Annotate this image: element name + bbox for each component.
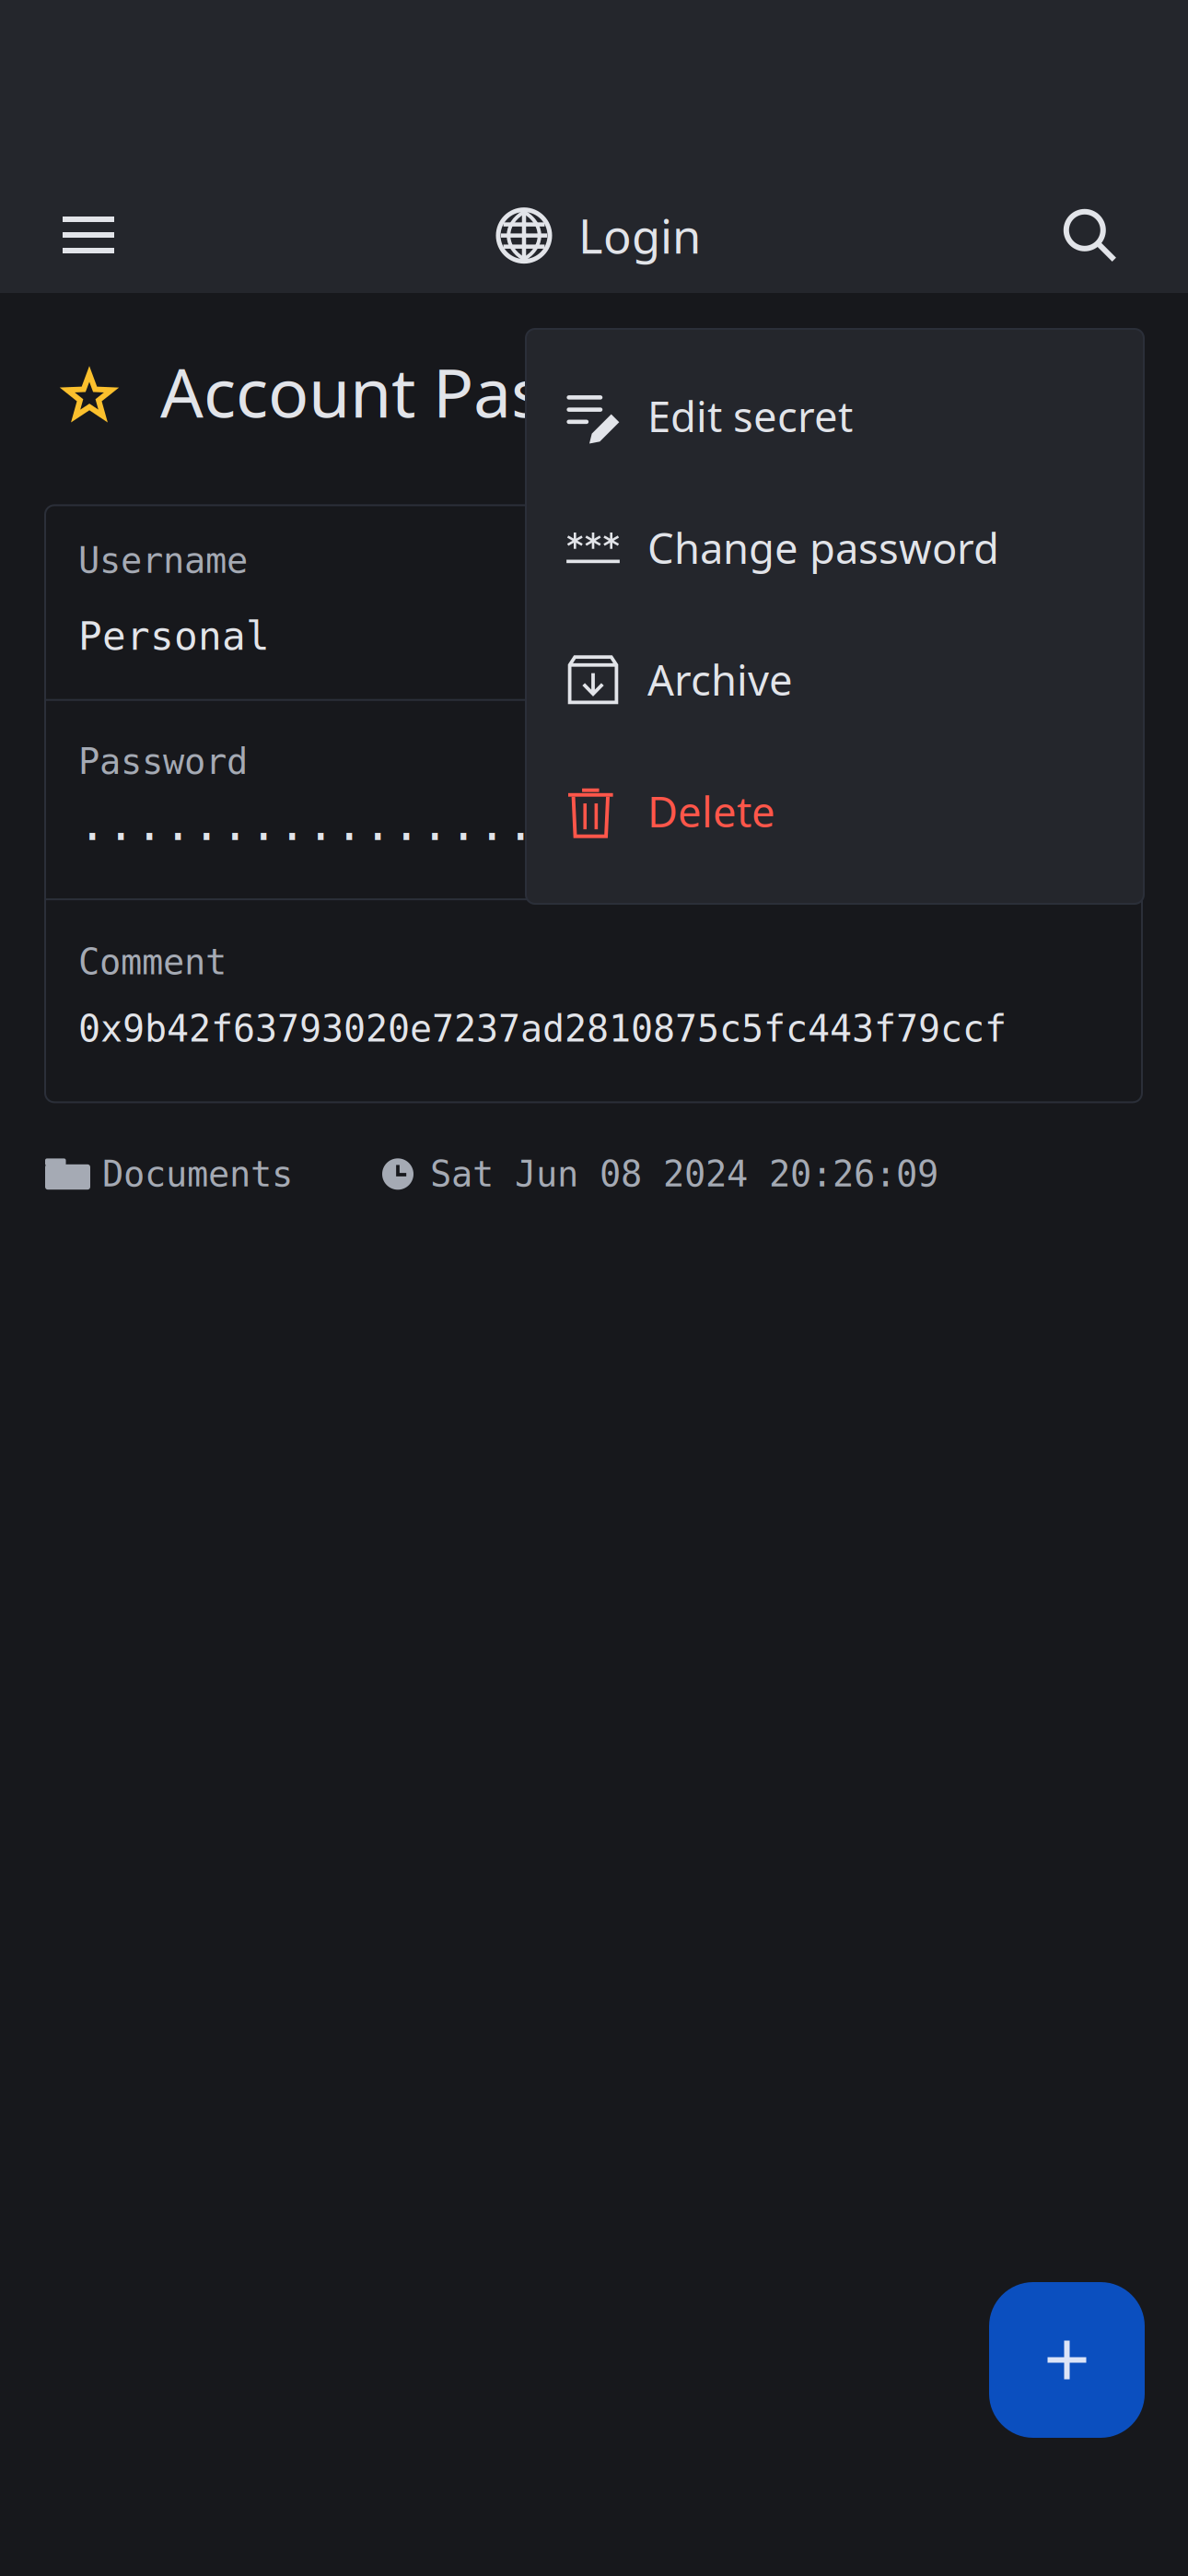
button[interactable]: Search (1040, 190, 1143, 284)
button[interactable]: Edit secret (526, 350, 1144, 482)
staticText: Login (578, 205, 701, 267)
staticText: Archive (647, 652, 793, 707)
staticText: ······················ (78, 810, 706, 863)
staticText: Documents (102, 1154, 293, 1194)
button[interactable]: Archive (526, 614, 1144, 745)
staticText: Sat Jun 08 2024 20:26:09 (430, 1154, 938, 1194)
button[interactable]: Change password (526, 482, 1144, 614)
button[interactable]: Add (989, 2282, 1145, 2438)
staticText: Comment (78, 942, 227, 982)
staticText: Username (78, 540, 248, 581)
staticText: Password (78, 741, 248, 782)
staticText: Edit secret (647, 388, 853, 444)
staticText: Personal (78, 614, 270, 658)
staticText: 0x9b42f63793020e7237ad2810875c5fc443f79c… (78, 1008, 1007, 1050)
staticText: Delete (647, 783, 775, 839)
staticText: Account Password (160, 346, 738, 436)
staticText: Change password (647, 520, 999, 575)
button[interactable]: Menu (34, 188, 143, 282)
button[interactable]: Delete (526, 745, 1144, 877)
